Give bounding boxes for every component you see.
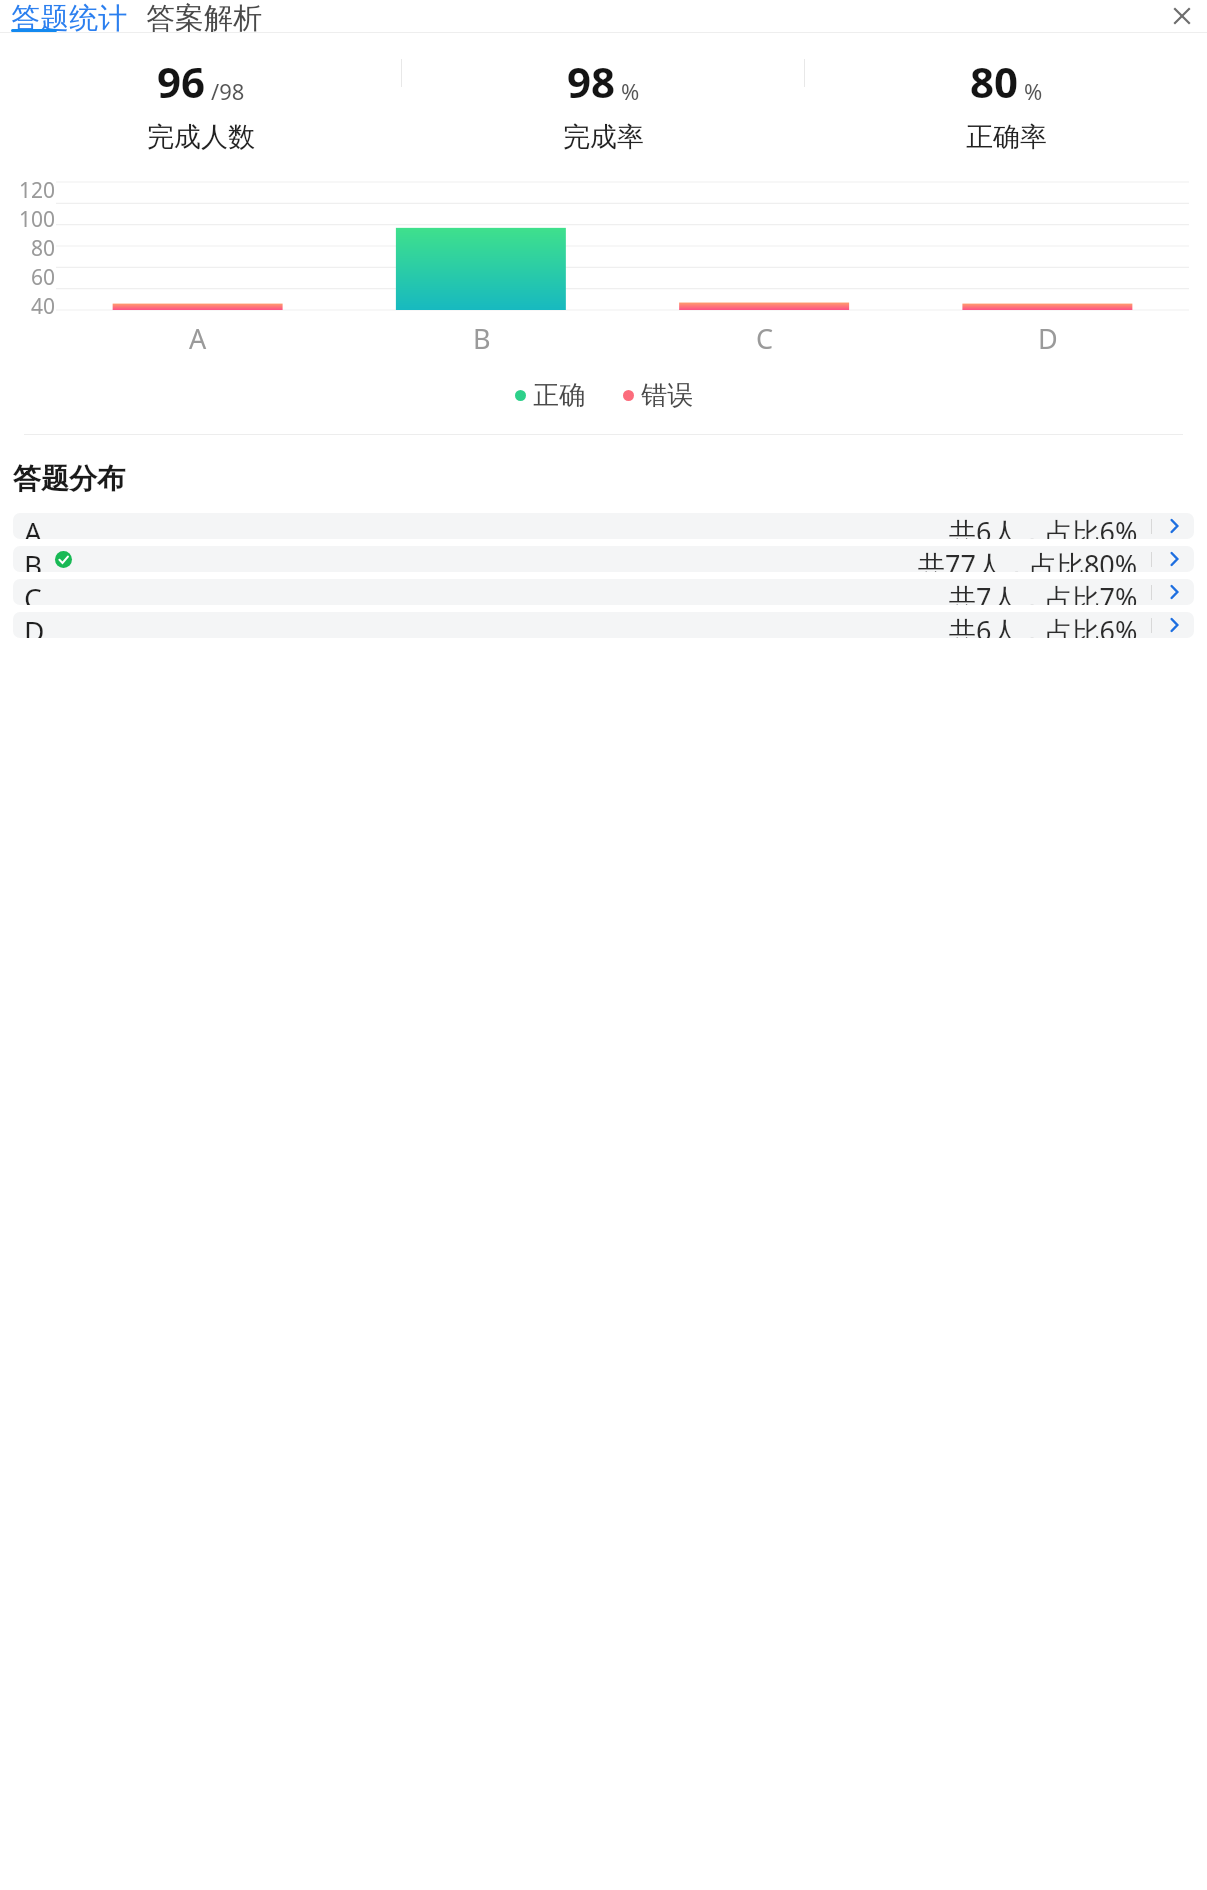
staticText: /98 [211, 76, 245, 106]
staticText: 100 [19, 205, 56, 234]
button[interactable]: Close [1169, 3, 1195, 29]
staticText: % [1024, 76, 1043, 106]
staticText: 80 [970, 53, 1019, 110]
staticText: 完成率 [563, 120, 644, 154]
staticText: 98 [567, 53, 616, 110]
staticText: 正确率 [966, 120, 1047, 154]
other: View details [1164, 549, 1184, 569]
staticText: 40 [31, 292, 56, 316]
staticText: 60 [31, 263, 56, 292]
button[interactable]: B [13, 546, 1194, 572]
button[interactable]: A [13, 513, 1194, 539]
staticText: 答案解析 [146, 0, 262, 32]
button[interactable]: D [13, 612, 1194, 638]
staticText: 答题统计 [11, 0, 127, 32]
staticText: C [756, 320, 774, 357]
staticText: 错误 [641, 379, 693, 412]
button[interactable]: 答题统计 [11, 0, 127, 32]
staticText: A [189, 320, 207, 357]
other: View details [1164, 516, 1184, 536]
staticText: B [24, 546, 43, 572]
staticText: 答题分布 [13, 461, 125, 496]
other: View details [1164, 615, 1184, 635]
button[interactable]: 答案解析 [146, 0, 262, 32]
staticText: 120 [19, 176, 56, 205]
staticText: A [24, 513, 42, 539]
staticText: C [24, 579, 42, 605]
staticText: 共6人，占比6% [949, 612, 1138, 638]
staticText: D [24, 612, 45, 638]
staticText: 正确 [533, 379, 585, 412]
staticText: D [1038, 320, 1058, 357]
staticText: 完成人数 [147, 120, 255, 154]
staticText: 80 [31, 234, 56, 263]
staticText: 共6人，占比6% [949, 513, 1138, 539]
staticText: 共7人，占比7% [949, 579, 1138, 605]
staticText: 96 [157, 53, 206, 110]
staticText: 共77人，占比80% [918, 546, 1138, 572]
button[interactable]: C [13, 579, 1194, 605]
other: View details [1164, 582, 1184, 602]
staticText: % [621, 76, 640, 106]
staticText: B [473, 320, 491, 357]
